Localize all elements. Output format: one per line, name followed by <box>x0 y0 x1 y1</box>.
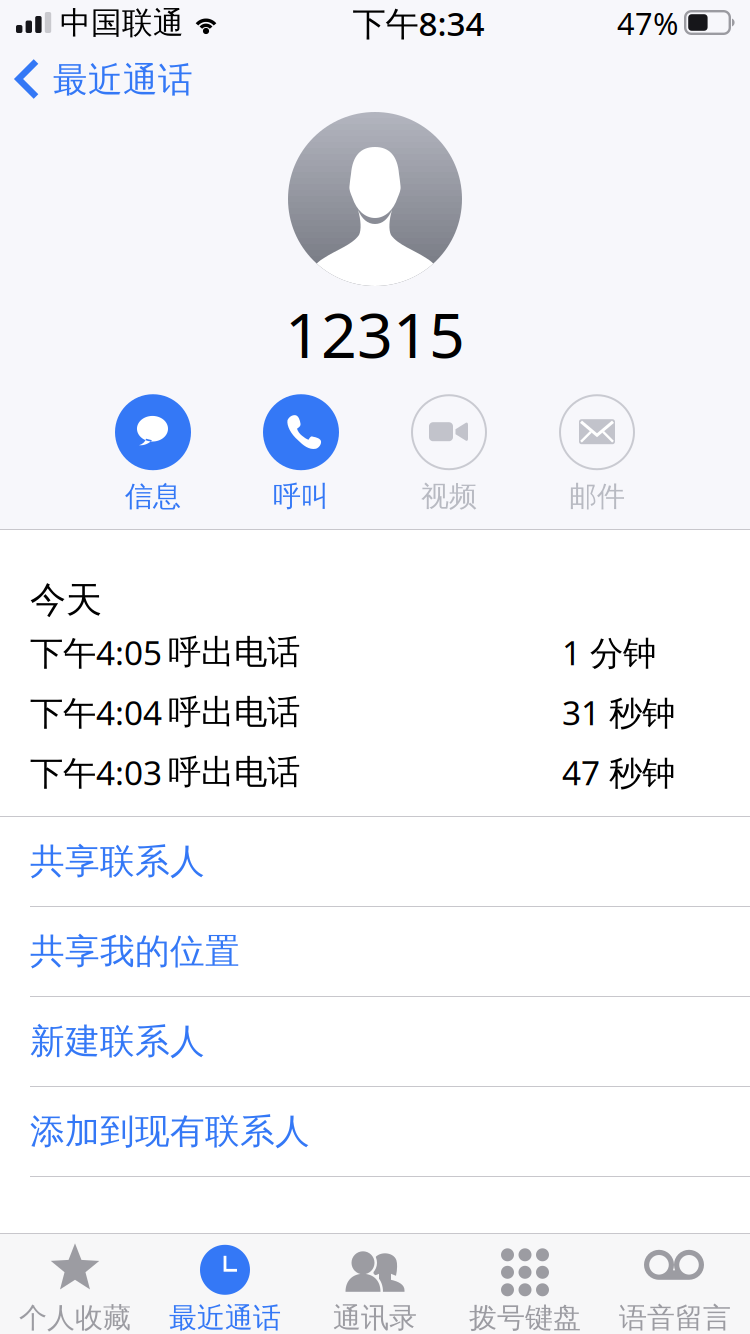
staticText: 下午4:04 <box>30 690 162 734</box>
button[interactable]: 通讯录 <box>300 1234 450 1334</box>
staticText: 今天 <box>30 578 102 622</box>
staticText: 添加到现有联系人 <box>30 1110 310 1153</box>
button[interactable]: 呼叫 <box>227 393 375 514</box>
button[interactable]: 信息 <box>79 393 227 514</box>
button[interactable]: 个人收藏 <box>0 1234 150 1334</box>
button[interactable]: 共享联系人 <box>0 817 750 906</box>
staticText: 语音留言 <box>619 1301 731 1334</box>
staticText: 信息 <box>125 479 181 514</box>
button[interactable]: 视频 <box>375 393 523 514</box>
staticText: 下午4:05 <box>30 630 162 674</box>
staticText: 最近通话 <box>169 1301 281 1334</box>
staticText: 个人收藏 <box>19 1301 131 1334</box>
staticText: 下午8:34 <box>352 1 484 45</box>
button[interactable]: 邮件 <box>523 393 671 514</box>
staticText: 47 秒钟 <box>562 750 675 794</box>
staticText: 12315 <box>285 292 465 375</box>
staticText: 共享联系人 <box>30 840 205 883</box>
staticText: 通讯录 <box>333 1301 417 1334</box>
button[interactable]: 新建联系人 <box>0 997 750 1086</box>
button[interactable]: 添加到现有联系人 <box>0 1087 750 1176</box>
button[interactable]: 拨号键盘 <box>450 1234 600 1334</box>
staticText: 31 秒钟 <box>562 690 675 734</box>
staticText: 呼出电话 <box>168 752 300 793</box>
staticText: 中国联通 <box>60 4 184 42</box>
staticText: 47% <box>617 3 678 43</box>
staticText: 共享我的位置 <box>30 930 240 973</box>
staticText: 最近通话 <box>53 59 193 101</box>
staticText: 呼出电话 <box>168 692 300 733</box>
button[interactable]: 最近通话 <box>150 1234 300 1334</box>
staticText: 下午4:03 <box>30 750 162 794</box>
staticText: 呼出电话 <box>168 632 300 673</box>
staticText: 1 分钟 <box>562 630 656 674</box>
staticText: 邮件 <box>569 479 625 514</box>
staticText: 拨号键盘 <box>469 1301 581 1334</box>
button[interactable]: 语音留言 <box>600 1234 750 1334</box>
staticText: 新建联系人 <box>30 1020 205 1063</box>
button[interactable]: 最近通话 <box>0 44 207 106</box>
staticText: 呼叫 <box>273 479 329 514</box>
button[interactable]: 共享我的位置 <box>0 907 750 996</box>
staticText: 视频 <box>421 479 477 514</box>
